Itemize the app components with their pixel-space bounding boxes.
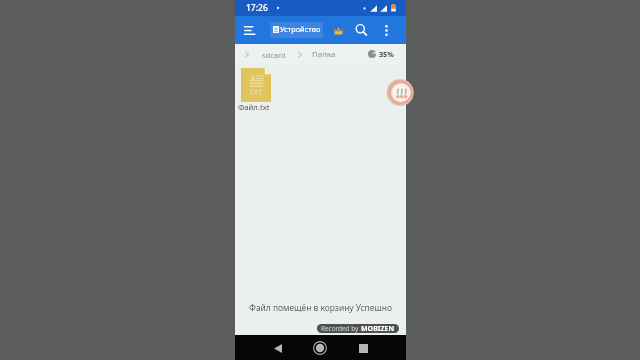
button[interactable]: Устройство <box>270 22 323 38</box>
staticText: Файл помещён в корзину Успешно <box>249 302 392 313</box>
staticText: MOBIZEN <box>361 324 395 333</box>
staticText: TXT <box>249 87 263 97</box>
button[interactable]: Search <box>352 21 370 39</box>
staticText: Recorded by <box>321 324 359 333</box>
button[interactable]: Папка <box>312 49 336 60</box>
button[interactable]: Recent apps <box>351 336 375 360</box>
staticText: 35% <box>379 49 394 59</box>
button[interactable]: Open navigation drawer <box>240 21 258 39</box>
button[interactable]: Back <box>266 336 290 360</box>
button[interactable]: Home <box>308 336 332 360</box>
button[interactable]: sdcard <box>262 50 286 60</box>
staticText: Устройство <box>280 24 321 34</box>
button[interactable]: More options <box>377 21 395 39</box>
button[interactable]: 35% <box>368 49 394 59</box>
button[interactable]: Premium <box>330 22 346 38</box>
staticText: 17:26 <box>246 2 268 14</box>
button[interactable]: TXT <box>241 68 289 112</box>
staticText: Файл.txt <box>238 102 270 112</box>
